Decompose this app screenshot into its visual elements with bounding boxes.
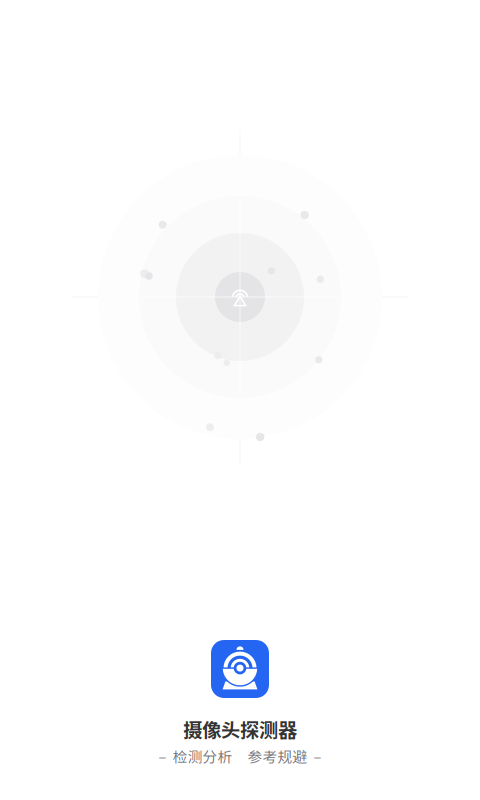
staticText: 摄像头探测器 bbox=[183, 715, 297, 743]
staticText: – 检测分析 参考规避 – bbox=[158, 745, 321, 767]
